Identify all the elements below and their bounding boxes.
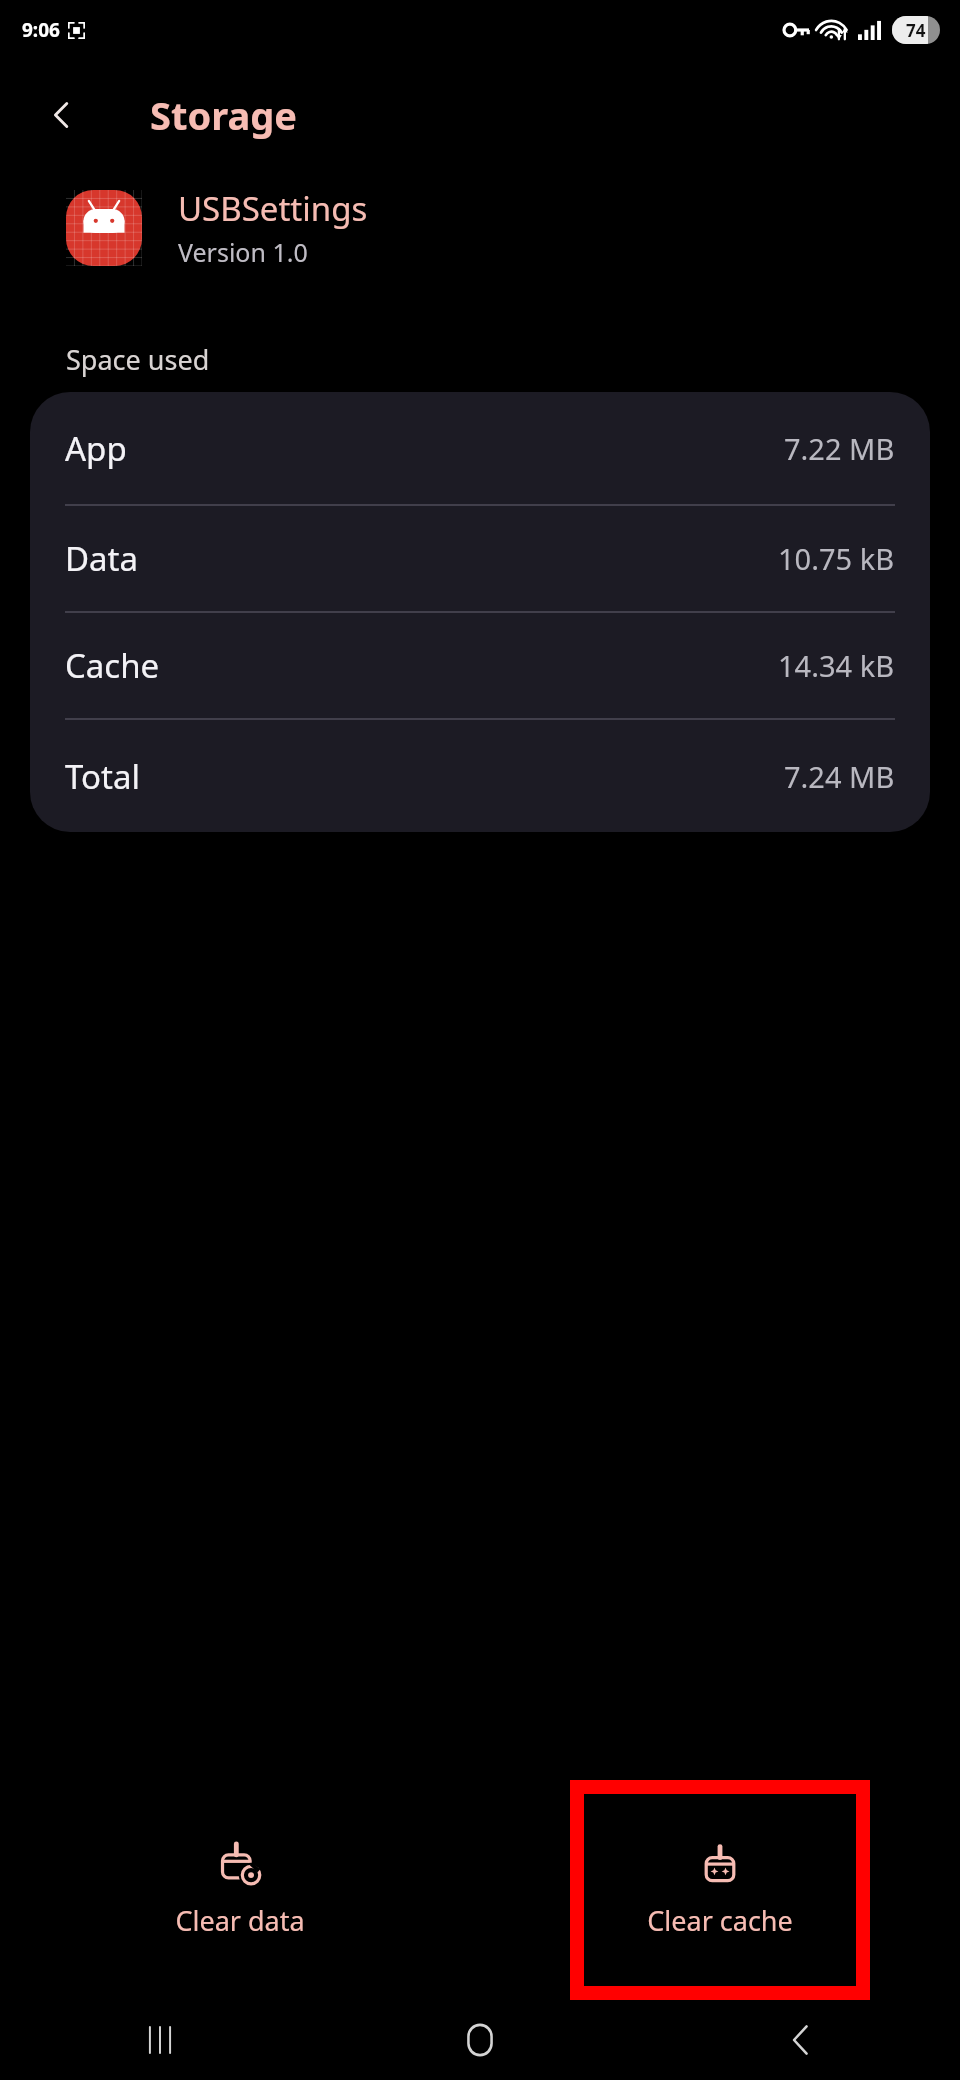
button[interactable]: Clear data — [145, 1828, 335, 1953]
staticText: USBSettings — [178, 186, 368, 231]
button[interactable]: Back — [34, 87, 90, 143]
staticText: Data — [65, 536, 139, 581]
staticText: 14.34 kB — [778, 646, 895, 685]
staticText: Total — [65, 754, 140, 799]
staticText: 9:06 — [22, 17, 60, 43]
staticText: Storage — [150, 89, 297, 141]
button[interactable]: Clear cache — [617, 1828, 823, 1953]
button[interactable]: Back — [640, 2000, 960, 2080]
staticText: Clear data — [175, 1902, 305, 1939]
staticText: 7.24 MB — [784, 757, 895, 796]
staticText: 74 — [906, 19, 926, 42]
staticText: 10.75 kB — [778, 539, 895, 578]
button[interactable]: Home — [320, 2000, 640, 2080]
staticText: 7.22 MB — [784, 429, 895, 468]
staticText: Cache — [65, 643, 160, 688]
staticText: Space used — [66, 341, 210, 378]
button[interactable]: Cache — [30, 613, 930, 718]
button[interactable]: Recent apps — [0, 2000, 320, 2080]
staticText: Clear cache — [647, 1902, 793, 1939]
staticText: Version 1.0 — [178, 235, 308, 269]
button[interactable]: Total — [30, 720, 930, 832]
button[interactable]: Data — [30, 506, 930, 611]
button[interactable]: App — [30, 392, 930, 504]
staticText: App — [65, 426, 127, 471]
